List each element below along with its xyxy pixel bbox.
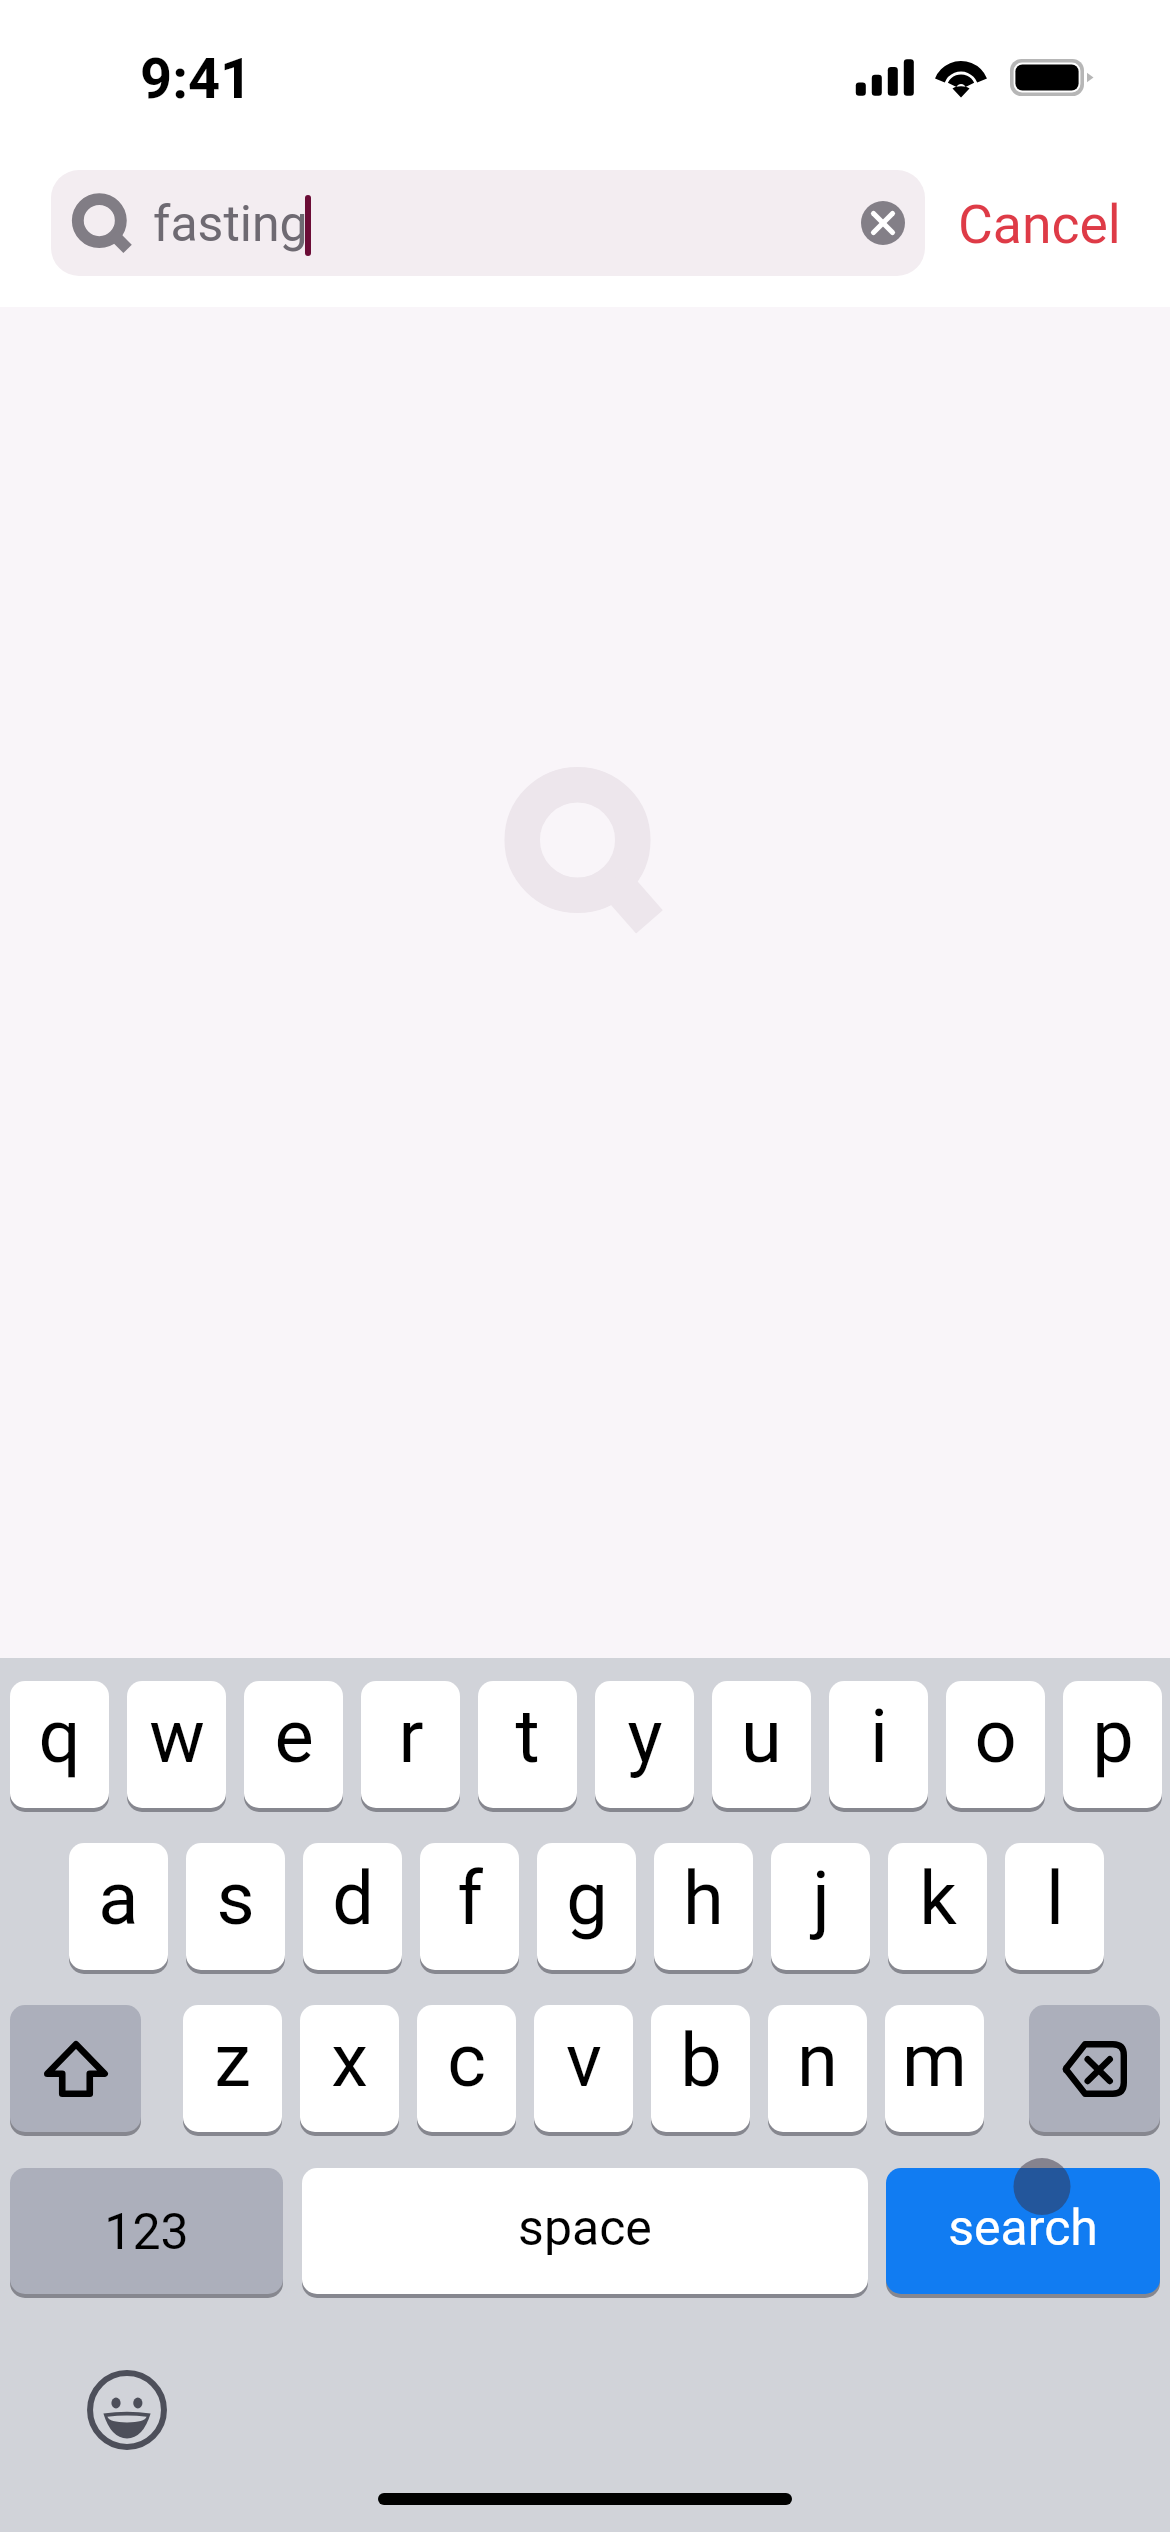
staticText: j xyxy=(812,1855,830,1942)
button[interactable]: space xyxy=(302,2168,868,2294)
staticText: n xyxy=(797,2017,838,2104)
staticText: a xyxy=(98,1855,139,1942)
button[interactable]: w xyxy=(127,1681,226,1808)
button[interactable]: k xyxy=(888,1843,987,1970)
button[interactable]: e xyxy=(244,1681,343,1808)
button[interactable]: search xyxy=(886,2168,1160,2294)
staticText: e xyxy=(274,1693,314,1780)
staticText: b xyxy=(680,2017,722,2104)
staticText: w xyxy=(149,1693,205,1780)
button[interactable]: u xyxy=(712,1681,811,1808)
button[interactable]: d xyxy=(303,1843,402,1970)
button[interactable]: b xyxy=(651,2005,750,2132)
button[interactable]: v xyxy=(534,2005,633,2132)
button[interactable]: j xyxy=(771,1843,870,1970)
staticText: p xyxy=(1092,1693,1134,1780)
button[interactable]: l xyxy=(1005,1843,1104,1970)
staticText: o xyxy=(974,1693,1017,1780)
button[interactable]: y xyxy=(595,1681,694,1808)
button[interactable]: a xyxy=(69,1843,168,1970)
staticText: x xyxy=(331,2017,368,2104)
button[interactable]: Cancel xyxy=(934,170,1145,276)
button[interactable]: p xyxy=(1063,1681,1162,1808)
staticText: 123 xyxy=(104,2203,189,2262)
staticText: q xyxy=(38,1693,81,1780)
staticText: f xyxy=(457,1855,483,1942)
button[interactable]: Backspace xyxy=(1029,2005,1160,2132)
button[interactable]: m xyxy=(885,2005,984,2132)
button[interactable]: Shift xyxy=(10,2005,141,2132)
staticText: u xyxy=(741,1693,782,1780)
button[interactable]: q xyxy=(10,1681,109,1808)
button[interactable]: o xyxy=(946,1681,1045,1808)
staticText: k xyxy=(919,1855,957,1942)
button[interactable]: r xyxy=(361,1681,460,1808)
staticText: search xyxy=(948,2199,1098,2258)
button[interactable]: z xyxy=(183,2005,282,2132)
staticText: d xyxy=(332,1855,374,1942)
staticText: h xyxy=(683,1855,724,1942)
button[interactable]: s xyxy=(186,1843,285,1970)
staticText: s xyxy=(216,1855,255,1942)
button[interactable]: t xyxy=(478,1681,577,1808)
button[interactable]: Clear text xyxy=(841,181,925,265)
button[interactable]: n xyxy=(768,2005,867,2132)
button[interactable]: f xyxy=(420,1843,519,1970)
staticText: g xyxy=(566,1855,608,1942)
staticText: m xyxy=(902,2017,967,2104)
button[interactable]: g xyxy=(537,1843,636,1970)
staticText: fasting xyxy=(153,195,308,254)
button[interactable]: fasting xyxy=(51,170,925,276)
button[interactable]: Emoji keyboard xyxy=(87,2370,167,2450)
staticText: v xyxy=(566,2017,602,2104)
staticText: space xyxy=(518,2199,652,2258)
button[interactable]: i xyxy=(829,1681,928,1808)
staticText: l xyxy=(1046,1855,1064,1942)
staticText: z xyxy=(214,2017,251,2104)
staticText: r xyxy=(398,1693,424,1780)
button[interactable]: 123 xyxy=(10,2168,283,2294)
staticText: i xyxy=(870,1693,888,1780)
staticText: y xyxy=(627,1693,663,1780)
staticText: c xyxy=(447,2017,486,2104)
staticText: t xyxy=(515,1693,540,1780)
button[interactable]: c xyxy=(417,2005,516,2132)
button[interactable]: x xyxy=(300,2005,399,2132)
button[interactable]: h xyxy=(654,1843,753,1970)
staticText: 9:41 xyxy=(140,46,253,112)
staticText: Cancel xyxy=(958,193,1121,256)
